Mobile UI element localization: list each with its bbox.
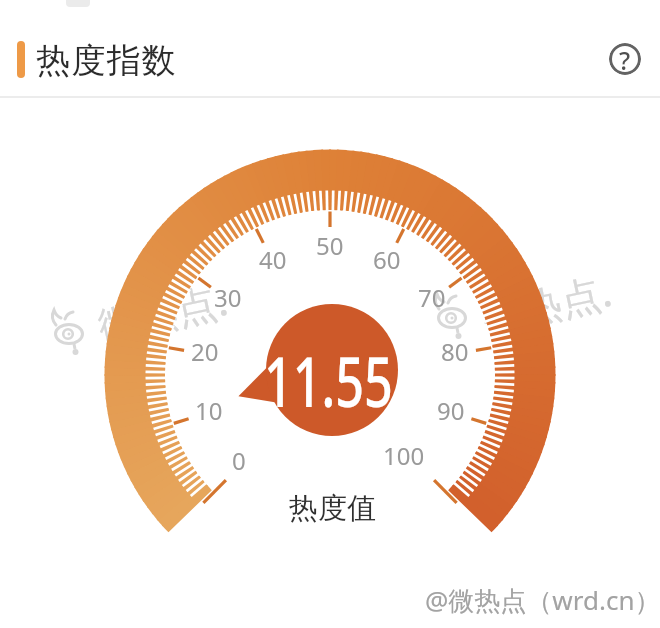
staticText: 100 (383, 439, 425, 472)
staticText: 热度指数 (36, 39, 177, 82)
staticText: 10 (195, 394, 223, 427)
staticText: 30 (214, 281, 242, 314)
staticText: 40 (259, 243, 287, 276)
staticText: @微热点（wrd.cn） (425, 582, 660, 618)
staticText: 11.55 (264, 333, 393, 423)
staticText: 80 (441, 335, 469, 368)
staticText: 热度值 (289, 490, 376, 527)
staticText: 60 (373, 243, 401, 276)
button[interactable]: ? (609, 43, 641, 75)
staticText: 70 (418, 281, 446, 314)
staticText: 20 (191, 335, 219, 368)
staticText: 微热点. (93, 272, 232, 353)
staticText: 0 (232, 444, 246, 477)
staticText: 90 (437, 394, 465, 427)
staticText: ? (619, 43, 631, 75)
staticText: 50 (316, 229, 344, 262)
staticText: 微热点. (477, 263, 616, 344)
